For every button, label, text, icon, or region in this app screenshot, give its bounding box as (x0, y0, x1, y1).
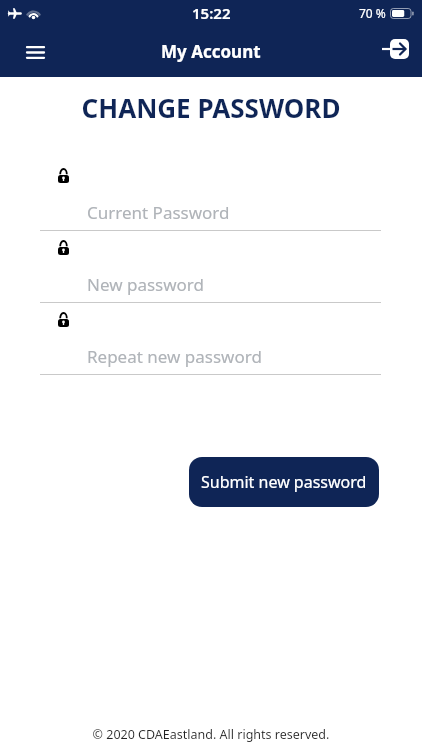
staticText: © 2020 CDAEastland. All rights reserved. (0, 726, 422, 743)
button[interactable]: New password (40, 238, 381, 310)
button[interactable]: Submit new password (189, 457, 379, 507)
staticText: New password (87, 273, 205, 296)
staticText: Submit new password (201, 471, 367, 493)
staticText: Repeat new password (87, 345, 262, 368)
button[interactable]: Current Password (40, 166, 381, 238)
button[interactable] (18, 35, 52, 69)
button[interactable] (376, 31, 412, 67)
button[interactable]: Repeat new password (40, 310, 381, 382)
staticText: 70 % (359, 5, 386, 21)
staticText: CHANGE PASSWORD (0, 90, 422, 125)
staticText: Current Password (87, 201, 230, 224)
staticText: 15:22 (192, 3, 231, 23)
staticText: My Account (161, 40, 261, 63)
